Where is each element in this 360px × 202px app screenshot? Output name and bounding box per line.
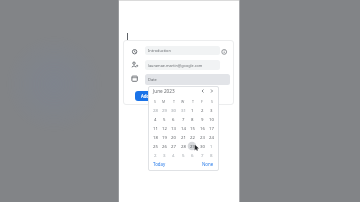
staticText: 5 (182, 152, 185, 158)
button[interactable]: 5 (160, 115, 169, 123)
staticText: 19 (162, 134, 167, 140)
button[interactable]: 1 (188, 106, 197, 114)
staticText: 13 (171, 125, 176, 131)
button[interactable]: 27 (169, 142, 178, 150)
staticText: 7 (201, 152, 204, 158)
button[interactable]: 15 (188, 124, 197, 132)
button[interactable]: 29 (188, 142, 197, 150)
staticText: 6 (191, 152, 194, 158)
staticText: 12 (162, 125, 167, 131)
staticText: 22 (190, 134, 195, 140)
button[interactable]: 23 (198, 133, 207, 141)
button[interactable]: Today (153, 161, 169, 167)
button[interactable]: 13 (169, 124, 178, 132)
staticText: 8 (191, 116, 194, 122)
button[interactable]: 2 (151, 151, 160, 159)
button[interactable]: 6 (188, 151, 197, 159)
button[interactable]: 8 (188, 115, 197, 123)
button[interactable]: 30 (169, 106, 178, 114)
staticText: 1 (191, 107, 194, 113)
button[interactable]: 12 (160, 124, 169, 132)
button[interactable]: 16 (198, 124, 207, 132)
staticText: 18 (153, 134, 158, 140)
staticText: M (162, 99, 166, 104)
button[interactable]: Date (145, 74, 230, 85)
button[interactable]: 6 (169, 115, 178, 123)
staticText: 7 (182, 116, 185, 122)
staticText: 23 (200, 134, 205, 140)
button[interactable] (201, 88, 206, 93)
staticText: 6 (172, 116, 175, 122)
staticText: None (202, 161, 214, 167)
staticText: 10 (209, 116, 214, 122)
button[interactable]: 31 (179, 106, 188, 114)
button[interactable]: 10 (207, 115, 216, 123)
staticText: 11 (153, 125, 158, 131)
staticText: 3 (163, 152, 166, 158)
staticText: 28 (181, 143, 186, 149)
staticText: 1 (210, 143, 213, 149)
staticText: 2 (154, 152, 157, 158)
staticText: Date (148, 77, 157, 82)
staticText: June 2023 (153, 88, 175, 94)
staticText: Today (153, 161, 166, 167)
staticText: 24 (209, 134, 214, 140)
staticText: W (181, 99, 185, 104)
staticText: 29 (162, 107, 167, 113)
button[interactable]: None (202, 161, 215, 167)
button[interactable]: lauramae.martin@google.com (145, 60, 220, 70)
button[interactable]: 7 (198, 151, 207, 159)
staticText: Introduction (148, 48, 171, 53)
button[interactable]: 1 (207, 142, 216, 150)
button[interactable]: 8 (207, 151, 216, 159)
button[interactable]: 9 (198, 115, 207, 123)
button[interactable]: 4 (151, 115, 160, 123)
staticText: 29 (190, 143, 195, 149)
staticText: 4 (172, 152, 175, 158)
staticText: 31 (181, 107, 186, 113)
staticText: 5 (163, 116, 166, 122)
button[interactable]: Add (135, 91, 155, 101)
staticText: S (154, 99, 156, 104)
button[interactable]: 24 (207, 133, 216, 141)
staticText: 27 (171, 143, 176, 149)
button[interactable]: 18 (151, 133, 160, 141)
button[interactable]: 4 (169, 151, 178, 159)
button[interactable]: 28 (151, 106, 160, 114)
button[interactable]: Introduction (145, 46, 220, 55)
button[interactable]: 17 (207, 124, 216, 132)
button[interactable]: 25 (151, 142, 160, 150)
button[interactable]: 3 (160, 151, 169, 159)
staticText: T (173, 99, 175, 104)
staticText: S (211, 99, 213, 104)
button[interactable]: 22 (188, 133, 197, 141)
staticText: 2 (201, 107, 204, 113)
button[interactable]: 3 (207, 106, 216, 114)
staticText: 25 (153, 143, 158, 149)
staticText: 4 (154, 116, 157, 122)
button[interactable]: 11 (151, 124, 160, 132)
button[interactable]: 7 (179, 115, 188, 123)
staticText: 30 (200, 143, 205, 149)
staticText: 16 (200, 125, 205, 131)
staticText: 8 (210, 152, 213, 158)
button[interactable]: 14 (179, 124, 188, 132)
staticText: 20 (171, 134, 176, 140)
button[interactable]: 29 (160, 106, 169, 114)
button[interactable]: 5 (179, 151, 188, 159)
staticText: 17 (209, 125, 214, 131)
button[interactable] (210, 88, 215, 93)
staticText: 30 (171, 107, 176, 113)
button[interactable]: 26 (160, 142, 169, 150)
staticText: T (192, 99, 194, 104)
button[interactable]: 28 (179, 142, 188, 150)
button[interactable]: 2 (198, 106, 207, 114)
button[interactable]: 19 (160, 133, 169, 141)
staticText: 3 (210, 107, 213, 113)
button[interactable]: 21 (179, 133, 188, 141)
staticText: 15 (190, 125, 195, 131)
button[interactable]: 30 (198, 142, 207, 150)
staticText: 21 (181, 134, 186, 140)
staticText: F (201, 99, 203, 104)
button[interactable]: 20 (169, 133, 178, 141)
